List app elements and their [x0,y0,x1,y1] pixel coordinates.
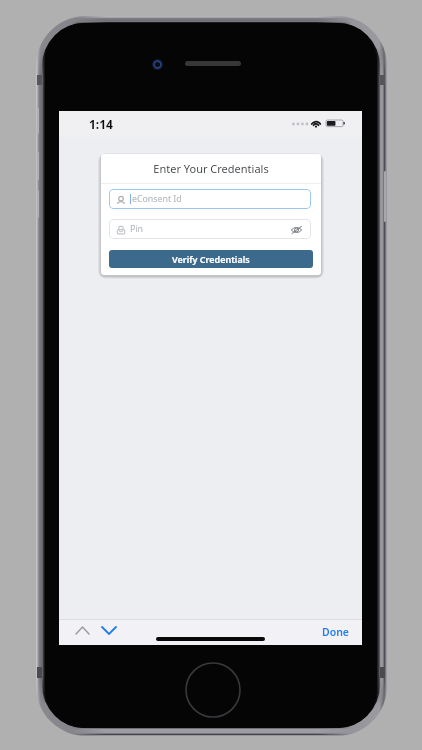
button[interactable]: Previous field [70,620,95,645]
staticText: eConsent Id [132,193,182,205]
button[interactable]: Done [322,619,350,644]
button[interactable]: Pin [109,219,311,239]
staticText: Pin [130,223,144,235]
button[interactable]: Next field [96,620,121,645]
button[interactable]: Show pin [291,226,302,234]
button[interactable]: eConsent Id [109,189,311,209]
button[interactable]: Verify Credentials [109,250,313,268]
staticText: Done [322,625,350,639]
staticText: 1:14 [89,116,113,132]
staticText: Enter Your Credentials [153,161,269,176]
staticText: Verify Credentials [172,253,250,265]
